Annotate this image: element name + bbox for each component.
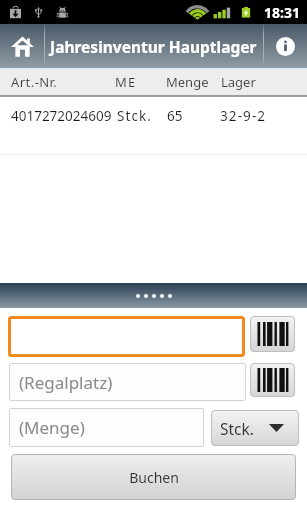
staticText: ME — [115, 73, 137, 91]
button[interactable]: Home — [0, 24, 44, 68]
button[interactable]: Stck. — [211, 410, 299, 446]
staticText: 18:31 — [264, 3, 300, 22]
staticText: Jahresinventur Hauptlager — [50, 36, 257, 57]
button[interactable]: Buchen — [11, 454, 296, 500]
staticText: Stck. — [220, 418, 254, 439]
button[interactable] — [8, 316, 245, 357]
staticText: Lager — [221, 73, 256, 91]
staticText: Buchen — [129, 468, 179, 487]
staticText: (Regalplatz) — [19, 371, 113, 394]
button[interactable]: 4017272024609 — [0, 97, 307, 155]
button[interactable]: (Menge) — [9, 408, 204, 447]
staticText: Menge — [166, 73, 209, 91]
button[interactable]: Drag panel — [0, 283, 307, 308]
button[interactable]: Info — [264, 24, 307, 68]
staticText: (Menge) — [19, 416, 85, 439]
button[interactable]: (Regalplatz) — [9, 363, 246, 401]
staticText: Stck. — [117, 107, 153, 125]
staticText: Art.-Nr. — [11, 73, 58, 91]
staticText: 4017272024609 — [11, 107, 112, 125]
staticText: 32-9-2 — [220, 107, 267, 125]
staticText: 65 — [167, 107, 183, 125]
button[interactable]: Scan barcode — [250, 363, 295, 397]
button[interactable]: Scan barcode — [250, 316, 295, 352]
